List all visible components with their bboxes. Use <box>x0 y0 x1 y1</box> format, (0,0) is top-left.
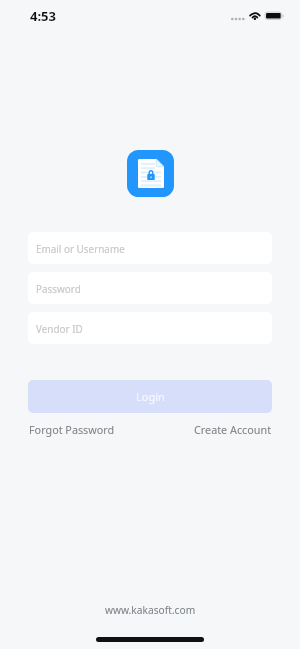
staticText: Login <box>136 389 165 404</box>
staticText: www.kakasoft.com <box>105 603 196 617</box>
button[interactable]: Password <box>28 272 272 304</box>
button[interactable]: App logo <box>127 150 174 197</box>
staticText: Email or Username <box>36 242 125 255</box>
button[interactable]: Email or Username <box>28 232 272 264</box>
button[interactable]: www.kakasoft.com <box>105 603 196 617</box>
button[interactable]: Login <box>28 380 272 413</box>
staticText: 4:53 <box>30 7 56 25</box>
button[interactable]: Vendor ID <box>28 312 272 344</box>
staticText: Forgot Password <box>29 422 115 437</box>
button[interactable]: Forgot Password <box>29 422 115 437</box>
staticText: Create Account <box>194 422 272 437</box>
staticText: Password <box>36 282 81 295</box>
button[interactable]: Create Account <box>194 422 272 437</box>
staticText: Vendor ID <box>36 322 83 335</box>
